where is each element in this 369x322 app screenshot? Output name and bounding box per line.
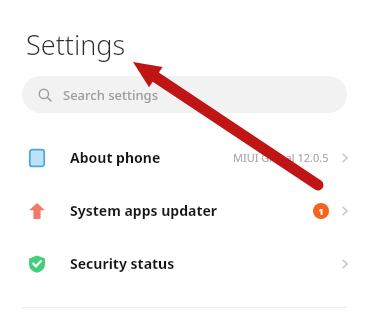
button[interactable]: About phone: [0, 131, 369, 184]
staticText: Search settings: [63, 86, 158, 104]
staticText: Security status: [70, 254, 175, 273]
staticText: Settings: [26, 26, 126, 63]
staticText: About phone: [70, 148, 161, 167]
button[interactable]: Security status: [0, 237, 369, 290]
staticText: MIUI Global 12.0.5: [233, 150, 329, 165]
button[interactable]: System apps updater: [0, 184, 369, 237]
button[interactable]: Search settings: [22, 76, 347, 113]
staticText: 1: [318, 205, 324, 217]
staticText: System apps updater: [70, 201, 218, 220]
